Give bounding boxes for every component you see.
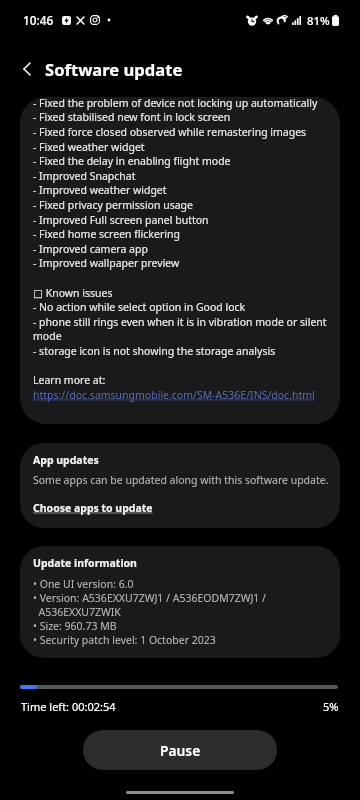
staticText: □ Known issues (33, 286, 113, 300)
staticText: 5% (323, 699, 339, 714)
button[interactable]: https://doc.samsungmobile.com/SM-A536E/I… (33, 388, 315, 402)
staticText: Some apps can be updated along with this… (33, 473, 329, 487)
staticText: 10:46 (23, 12, 54, 28)
staticText: App updates (33, 453, 99, 467)
staticText: Update information (33, 556, 137, 570)
staticText: - Fixed weather widget (33, 140, 145, 154)
staticText: - storage icon is not showing the storag… (33, 344, 276, 358)
staticText: - Improved wallpaper preview (33, 256, 180, 270)
staticText: - Fixed the problem of device not lockin… (33, 97, 318, 110)
staticText: • Version: A536EXXU7ZWJ1 / A536EODM7ZWJ1… (33, 591, 266, 605)
staticText: - No action while select option in Good … (33, 300, 246, 314)
staticText: - Fixed home screen flickering (33, 227, 180, 241)
staticText: - Fixed privacy permission usage (33, 198, 193, 212)
staticText: • Size: 960.73 MB (33, 619, 117, 633)
staticText: Time left: 00:02:54 (21, 699, 116, 714)
staticText: - Improved Snapchat (33, 169, 136, 183)
staticText: A536EXXU7ZWIK (33, 605, 121, 619)
staticText: - Improved Full screen panel button (33, 213, 209, 227)
staticText: - Improved camera app (33, 242, 148, 256)
staticText: Learn more at: (33, 373, 106, 387)
staticText: 81% (307, 13, 330, 28)
staticText: • Security patch level: 1 October 2023 (33, 633, 216, 647)
staticText: • One UI version: 6.0 (33, 577, 134, 591)
staticText: - Improved weather widget (33, 183, 167, 197)
staticText: - Fixed the delay in enabling flight mod… (33, 154, 231, 168)
staticText: Software update (45, 58, 183, 81)
button[interactable]: Navigate up (13, 55, 41, 83)
staticText: - Fixed stabilised new font in lock scre… (33, 110, 231, 124)
staticText: Pause (160, 741, 201, 760)
staticText: - phone still rings even when it is in v… (33, 315, 327, 329)
staticText: mode (33, 329, 62, 343)
staticText: - Fixed force closed observed while rema… (33, 125, 307, 139)
button[interactable]: Choose apps to update (33, 501, 153, 515)
button[interactable]: Pause (83, 730, 277, 770)
